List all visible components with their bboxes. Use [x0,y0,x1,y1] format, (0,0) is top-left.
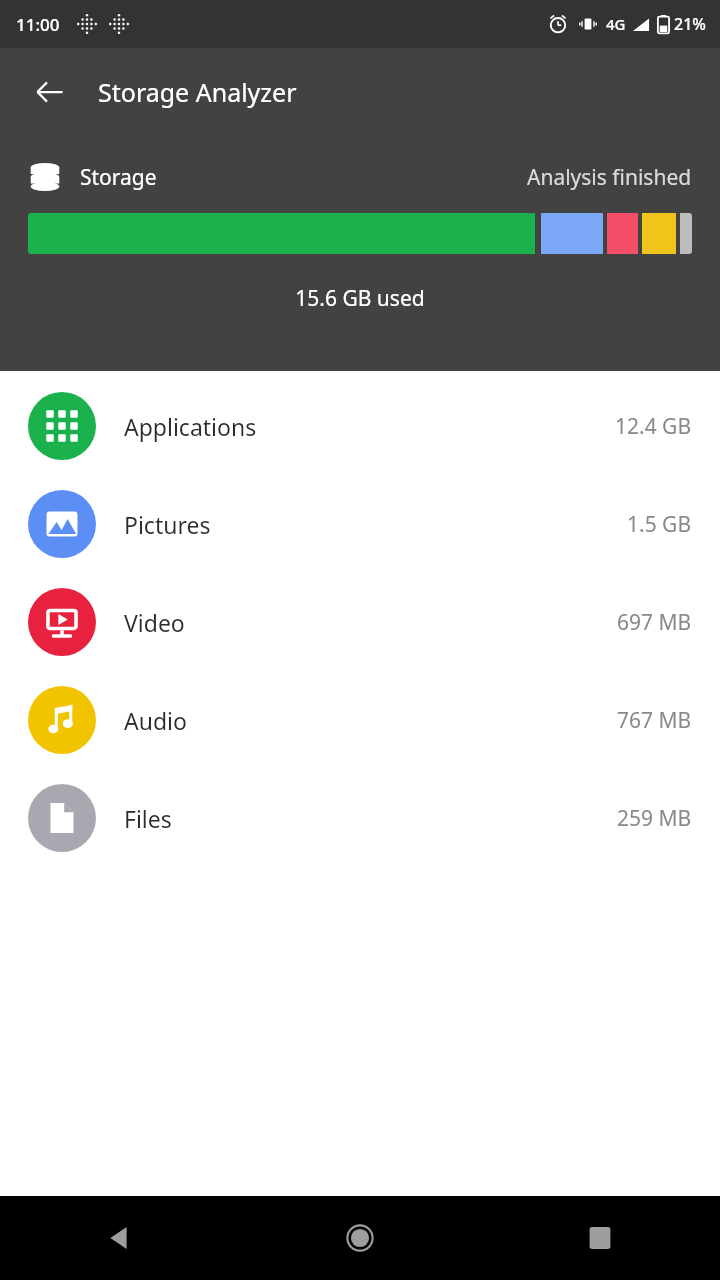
staticText: 15.6 GB used [0,284,720,313]
staticText: Analysis finished [527,163,692,192]
staticText: Files [124,803,172,834]
button[interactable]: Back [22,64,78,120]
staticText: 767 MB [617,706,692,735]
staticText: Storage Analyzer [98,75,297,109]
button[interactable]: Applications [0,377,720,475]
button[interactable]: Back [0,1196,240,1280]
staticText: Audio [124,705,187,736]
staticText: Video [124,607,185,638]
staticText: Pictures [124,509,211,540]
button[interactable]: Video [0,573,720,671]
button[interactable]: Files [0,769,720,867]
staticText: 4G [606,14,626,34]
button[interactable]: Recents [480,1196,720,1280]
staticText: 12.4 GB [615,412,692,441]
staticText: 1.5 GB [627,510,692,539]
staticText: Applications [124,411,257,442]
staticText: 259 MB [617,804,692,833]
staticText: 21% [674,13,706,35]
button[interactable]: Pictures [0,475,720,573]
button[interactable]: Home [240,1196,480,1280]
staticText: Storage [80,163,157,192]
staticText: 11:00 [16,13,60,36]
button[interactable]: Audio [0,671,720,769]
staticText: 697 MB [617,608,692,637]
